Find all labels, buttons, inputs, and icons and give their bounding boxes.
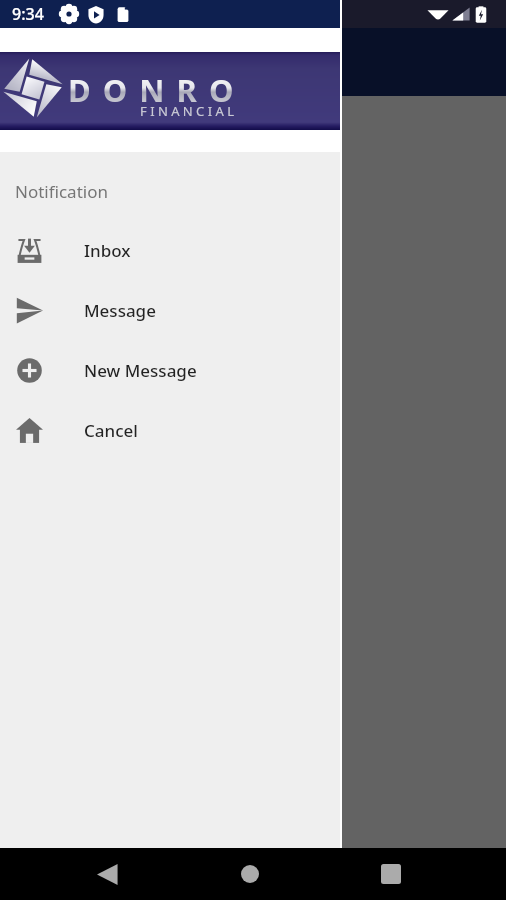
staticText: Inbox: [84, 239, 131, 262]
staticText: 9:34: [12, 3, 44, 25]
button[interactable]: Message: [0, 280, 342, 340]
staticText: F I N A N C I A L: [140, 102, 235, 120]
button[interactable]: Cancel: [0, 400, 342, 460]
button[interactable]: New Message: [0, 340, 342, 400]
button[interactable]: Back: [84, 851, 130, 897]
button[interactable]: Home: [227, 851, 273, 897]
staticText: Cancel: [84, 419, 138, 442]
staticText: Message: [84, 299, 156, 322]
staticText: Notification: [15, 180, 108, 203]
staticText: New Message: [84, 359, 197, 382]
button[interactable]: Recent apps: [368, 851, 414, 897]
button[interactable]: Inbox: [0, 220, 342, 280]
staticText: D O N R O: [68, 69, 236, 111]
